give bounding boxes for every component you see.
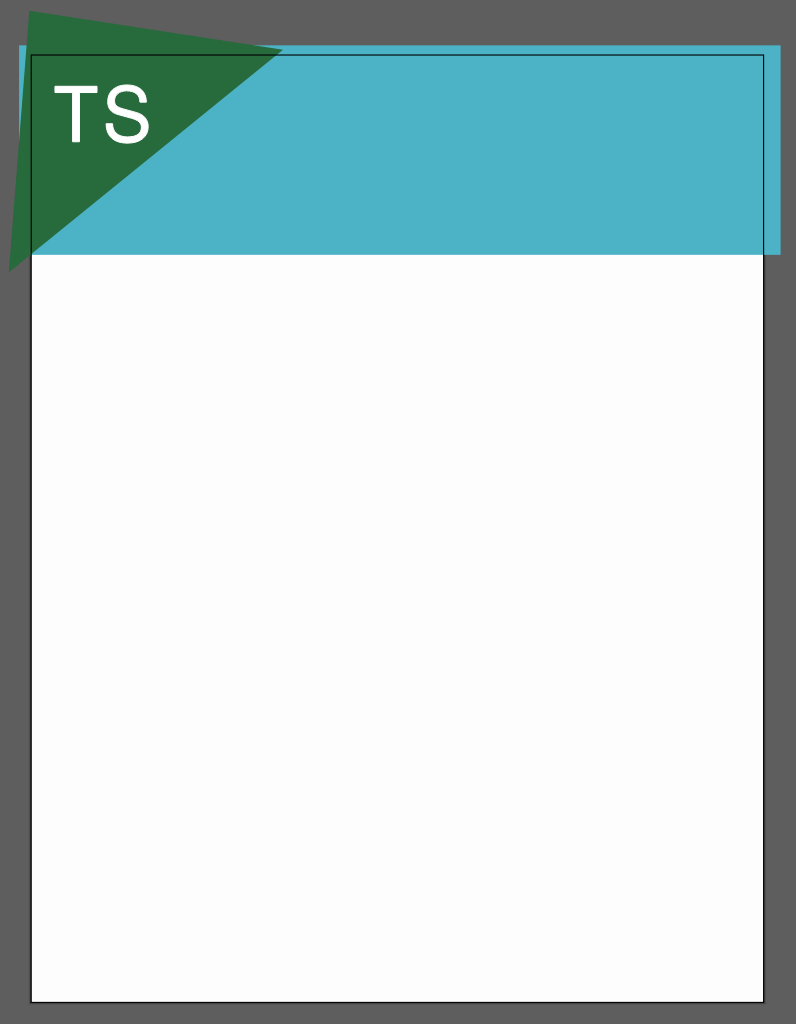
- button[interactable]: TS banner sheet: [0, 0, 796, 1024]
